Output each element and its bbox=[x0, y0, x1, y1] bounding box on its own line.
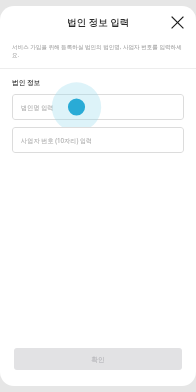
staticText: 법인 정보 입력 bbox=[67, 16, 129, 29]
staticText: 확인 bbox=[91, 355, 105, 364]
button[interactable]: 확인 bbox=[14, 348, 182, 370]
button[interactable]: Close bbox=[166, 11, 188, 33]
staticText: 사업자 번호 (10자리) 입력 bbox=[21, 136, 93, 144]
button[interactable]: 사업자 번호 (10자리) 입력 bbox=[12, 127, 184, 153]
staticText: 서비스 가입을 위해 등록하실 법인의 법인명, 사업자 번호를 입력하세요. bbox=[12, 43, 184, 59]
button[interactable]: 법인명 입력 bbox=[12, 94, 184, 120]
staticText: 법인 정보 bbox=[12, 78, 41, 87]
staticText: 법인명 입력 bbox=[21, 103, 54, 111]
